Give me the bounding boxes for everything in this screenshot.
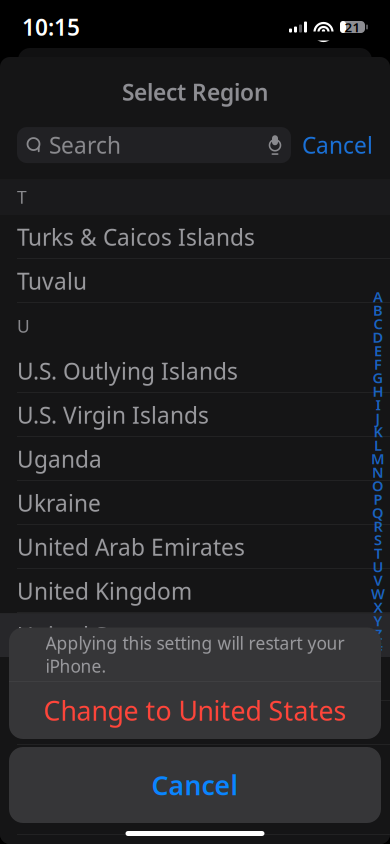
staticText: U xyxy=(372,557,383,576)
staticText: N xyxy=(372,462,384,482)
button[interactable]: Ukraine xyxy=(0,481,390,525)
staticText: 21 xyxy=(344,18,360,36)
staticText: M xyxy=(371,449,385,468)
staticText: T xyxy=(17,186,27,209)
staticText: S xyxy=(374,530,382,549)
staticText: Cancel xyxy=(302,130,373,160)
staticText: T xyxy=(374,543,382,563)
button[interactable]: Cancel xyxy=(9,747,381,823)
button[interactable]: Section index xyxy=(367,290,389,654)
staticText: E xyxy=(374,341,382,360)
staticText: Tuvalu xyxy=(17,266,87,296)
staticText: W xyxy=(371,584,385,603)
button[interactable]: Tuvalu xyxy=(0,259,390,303)
staticText: Uganda xyxy=(17,444,102,474)
staticText: Search xyxy=(49,130,121,160)
staticText: U.S. Outlying Islands xyxy=(17,356,238,386)
staticText: H xyxy=(372,381,383,401)
button[interactable]: United Arab Emirates xyxy=(0,525,390,569)
staticText: L xyxy=(374,435,382,455)
staticText: R xyxy=(373,516,382,536)
staticText: Vanuatu xyxy=(17,798,106,828)
staticText: I xyxy=(375,395,380,414)
staticText: United States xyxy=(17,620,160,650)
staticText: # xyxy=(373,638,382,657)
button[interactable]: Uganda xyxy=(0,437,390,481)
staticText: P xyxy=(373,489,382,509)
staticText: G xyxy=(372,368,383,387)
staticText: Cancel xyxy=(151,767,238,803)
staticText: Applying this setting will restart your … xyxy=(45,631,344,677)
button[interactable]: United Kingdom xyxy=(0,569,390,613)
staticText: Z xyxy=(374,624,382,644)
staticText: V xyxy=(373,570,382,590)
staticText: Select Region xyxy=(122,77,268,107)
staticText: Ukraine xyxy=(17,488,101,518)
staticText: United Arab Emirates xyxy=(17,532,245,562)
staticText: 10:15 xyxy=(22,12,80,42)
staticText: U.S. Virgin Islands xyxy=(17,400,209,430)
button[interactable]: Turks & Caicos Islands xyxy=(0,215,390,259)
staticText: U xyxy=(17,315,30,338)
staticText: Change to United States xyxy=(43,693,346,728)
button[interactable]: Vatican City xyxy=(0,835,390,844)
button[interactable]: U.S. Virgin Islands xyxy=(0,393,390,437)
staticText: F xyxy=(374,354,382,374)
button[interactable]: U.S. Outlying Islands xyxy=(0,349,390,393)
button[interactable]: Vanuatu xyxy=(0,791,390,835)
staticText: Turks & Caicos Islands xyxy=(17,222,255,252)
staticText: United Kingdom xyxy=(17,576,192,606)
staticText: Q xyxy=(372,503,384,522)
staticText: A xyxy=(373,287,383,306)
staticText: O xyxy=(372,476,384,495)
staticText: Uzbekistan xyxy=(17,708,136,738)
staticText: J xyxy=(375,408,380,428)
staticText: K xyxy=(373,422,382,441)
staticText: B xyxy=(373,300,383,320)
staticText: Uruguay xyxy=(17,664,110,694)
button[interactable]: United States xyxy=(0,613,390,657)
staticText: C xyxy=(373,314,382,333)
staticText: X xyxy=(373,597,382,617)
button[interactable]: Change to United States xyxy=(9,682,381,739)
button[interactable]: Uruguay xyxy=(0,657,390,701)
staticText: Y xyxy=(373,611,382,630)
staticText: D xyxy=(372,327,383,347)
button[interactable]: Uzbekistan xyxy=(0,701,390,745)
button[interactable]: Cancel xyxy=(302,124,373,166)
